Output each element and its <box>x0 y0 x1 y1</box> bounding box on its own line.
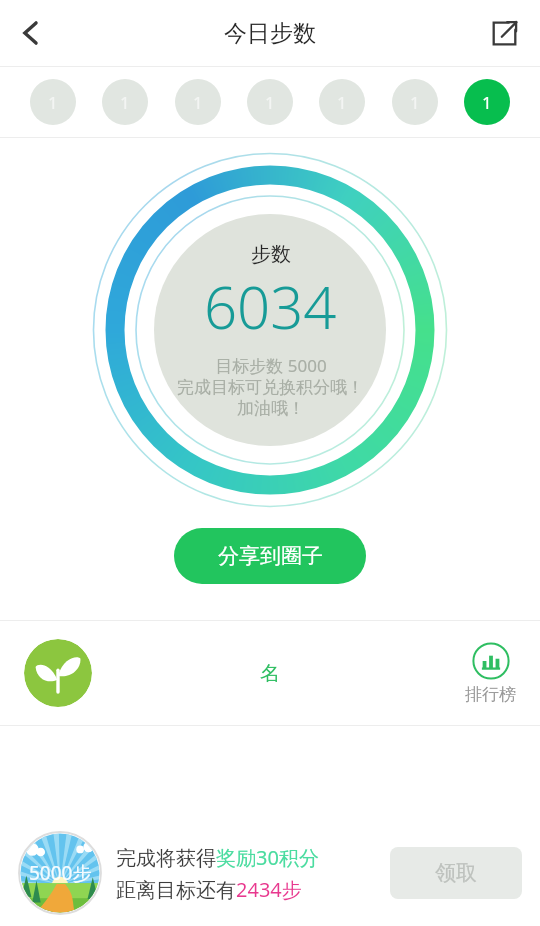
button[interactable]: 领取 <box>390 847 522 899</box>
staticText: 1 <box>48 91 58 114</box>
button[interactable]: 1 <box>102 79 148 125</box>
staticText: 加油哦！ <box>237 398 305 419</box>
button[interactable]: Sprout <box>24 639 92 707</box>
staticText: 今日步数 <box>224 19 316 48</box>
staticText: 1 <box>265 91 275 114</box>
button[interactable]: 排行榜 <box>465 642 516 705</box>
staticText: 排行榜 <box>465 684 516 705</box>
button[interactable]: 1 <box>175 79 221 125</box>
button[interactable]: 1 <box>392 79 438 125</box>
staticText: 领取 <box>435 860 477 886</box>
button[interactable]: 分享到圈子 <box>174 528 366 584</box>
staticText: 1 <box>120 91 130 114</box>
staticText: 距离目标还有2434步 <box>116 876 302 903</box>
staticText: 分享到圈子 <box>218 543 323 569</box>
staticText: 6034 <box>204 267 337 346</box>
button[interactable]: 1 <box>247 79 293 125</box>
button[interactable]: Back <box>4 6 58 60</box>
staticText: 1 <box>193 91 203 114</box>
button[interactable]: 1 <box>464 79 510 125</box>
button[interactable]: Share <box>478 7 530 59</box>
staticText: 步数 <box>251 242 291 267</box>
staticText: 完成目标可兑换积分哦！ <box>177 377 364 398</box>
staticText: 1 <box>482 91 492 114</box>
button[interactable]: 1 <box>30 79 76 125</box>
staticText: 目标步数 5000 <box>215 354 327 377</box>
staticText: 1 <box>337 91 347 114</box>
button[interactable]: 1 <box>319 79 365 125</box>
staticText: 完成将获得奖励30积分 <box>116 844 319 871</box>
staticText: 5000步 <box>29 860 92 886</box>
staticText: 名 <box>260 661 280 686</box>
staticText: 1 <box>410 91 420 114</box>
